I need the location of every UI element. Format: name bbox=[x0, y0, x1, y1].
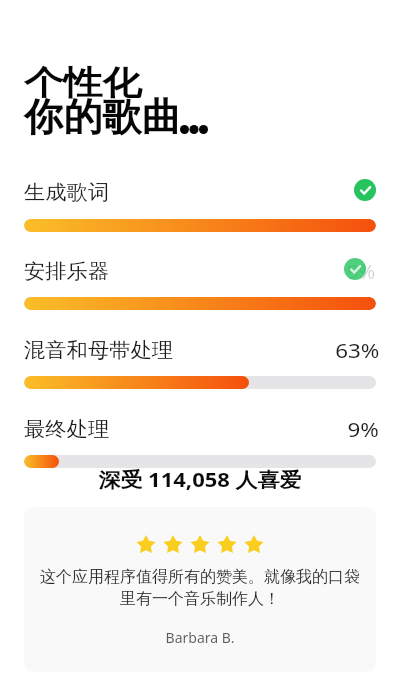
button[interactable]: 生成歌词 bbox=[24, 178, 376, 206]
staticText: 63% bbox=[335, 337, 380, 364]
staticText: 个性化 bbox=[24, 62, 142, 104]
staticText: 9% bbox=[347, 258, 376, 285]
staticText: 生成歌词 bbox=[24, 180, 109, 205]
staticText: Barbara B. bbox=[24, 628, 376, 647]
staticText: 安排乐器 bbox=[24, 259, 109, 284]
button[interactable]: 混音和母带处理 bbox=[24, 336, 376, 364]
staticText: 9% bbox=[347, 416, 380, 443]
button[interactable]: 这个应用程序值得所有的赞美。就像我的口袋里有一个音乐制作人！ bbox=[24, 507, 376, 672]
staticText: 这个应用程序值得所有的赞美。就像我的口袋里有一个音乐制作人！ bbox=[38, 567, 362, 609]
staticText: 深受 114,058 人喜爱 bbox=[6, 466, 394, 493]
button[interactable]: 安排乐器 bbox=[24, 257, 376, 285]
staticText: 最终处理 bbox=[24, 417, 109, 442]
staticText: 混音和母带处理 bbox=[24, 338, 173, 363]
button[interactable]: 最终处理 bbox=[24, 415, 376, 443]
staticText: 你的歌曲 bbox=[24, 93, 181, 141]
